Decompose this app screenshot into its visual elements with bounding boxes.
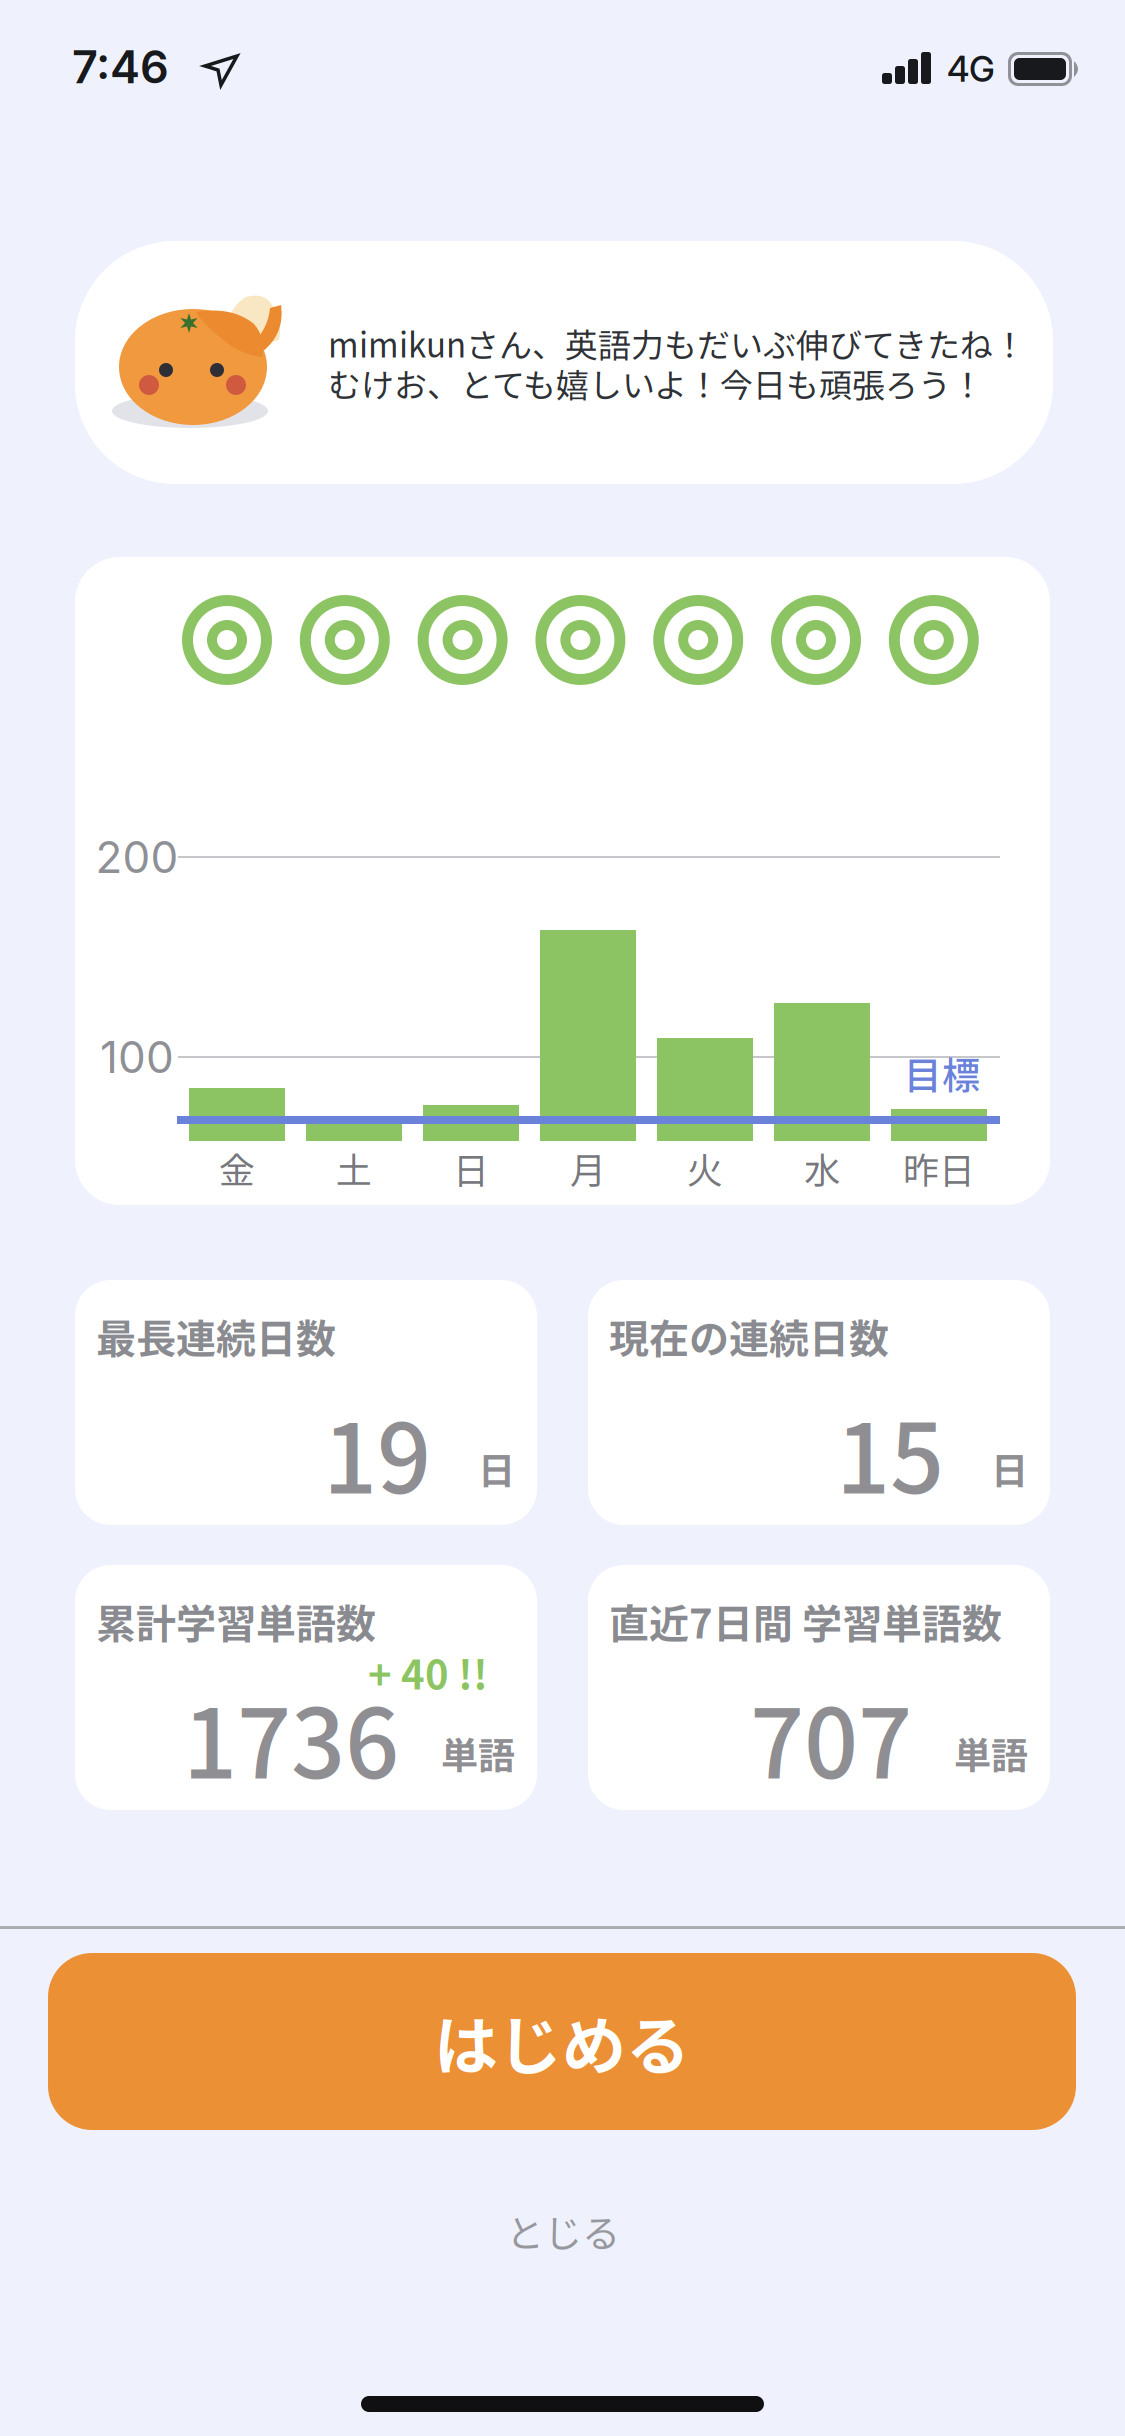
- staticText: 1736: [183, 1668, 399, 1806]
- button[interactable]: はじめる: [48, 1953, 1076, 2130]
- staticText: 目標: [904, 1045, 980, 1100]
- staticText: 日: [991, 1441, 1028, 1495]
- staticText: 15: [836, 1383, 944, 1521]
- staticText: 単語: [954, 1726, 1028, 1780]
- staticText: 昨日: [903, 1142, 975, 1194]
- staticText: 現在の連続日数: [609, 1307, 889, 1365]
- staticText: 水: [804, 1142, 840, 1194]
- staticText: 19: [323, 1383, 431, 1521]
- staticText: mimikunさん、英語力もだいぶ伸びてきたね！: [328, 319, 1026, 367]
- staticText: 累計学習単語数: [96, 1592, 376, 1650]
- staticText: 707: [750, 1668, 912, 1806]
- staticText: 金: [219, 1142, 255, 1194]
- staticText: むけお、とても嬉しいよ！今日も頑張ろう！: [328, 359, 984, 407]
- button[interactable]: とじる: [413, 2186, 713, 2276]
- staticText: 土: [336, 1142, 372, 1194]
- staticText: 月: [570, 1142, 606, 1194]
- staticText: 最長連続日数: [96, 1307, 336, 1365]
- staticText: はじめる: [434, 1995, 690, 2088]
- staticText: 100: [100, 1030, 174, 1084]
- staticText: 火: [687, 1142, 723, 1194]
- staticText: 直近7日間 学習単語数: [609, 1592, 1002, 1650]
- staticText: 日: [478, 1441, 515, 1495]
- staticText: 7:46: [72, 40, 169, 94]
- staticText: 4G: [947, 48, 995, 90]
- staticText: 日: [453, 1142, 489, 1194]
- staticText: 200: [95, 830, 178, 884]
- staticText: とじる: [506, 2203, 620, 2258]
- staticText: 単語: [441, 1726, 515, 1780]
- staticText: + 40 !!: [368, 1643, 488, 1701]
